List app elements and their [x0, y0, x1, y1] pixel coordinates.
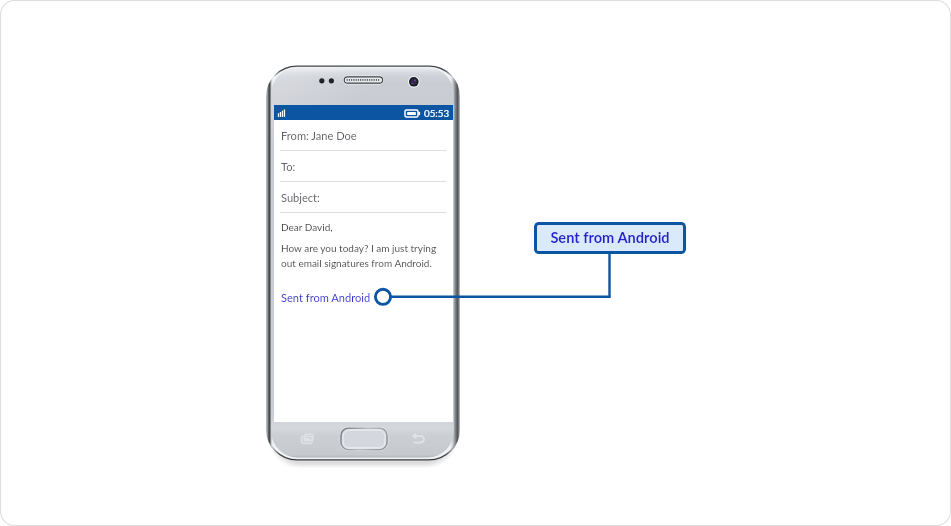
button[interactable]: Subject: [274, 182, 453, 213]
staticText: How are you today? I am just trying [281, 242, 437, 254]
staticText: Subject: [281, 191, 320, 204]
button[interactable]: Sent from Android [274, 291, 371, 304]
button[interactable]: From: Jane Doe [274, 120, 453, 151]
staticText: 05:53 [424, 107, 450, 119]
staticText: Dear David, [281, 221, 333, 233]
staticText: out email signatures from Android. [281, 257, 432, 269]
staticText: To: [281, 160, 296, 173]
button[interactable]: To: [274, 151, 453, 182]
staticText: Sent from Android [281, 291, 371, 304]
staticText: Sent from Android [550, 229, 670, 247]
staticText: From: Jane Doe [281, 129, 357, 142]
button[interactable]: Sent from Android [534, 222, 686, 254]
